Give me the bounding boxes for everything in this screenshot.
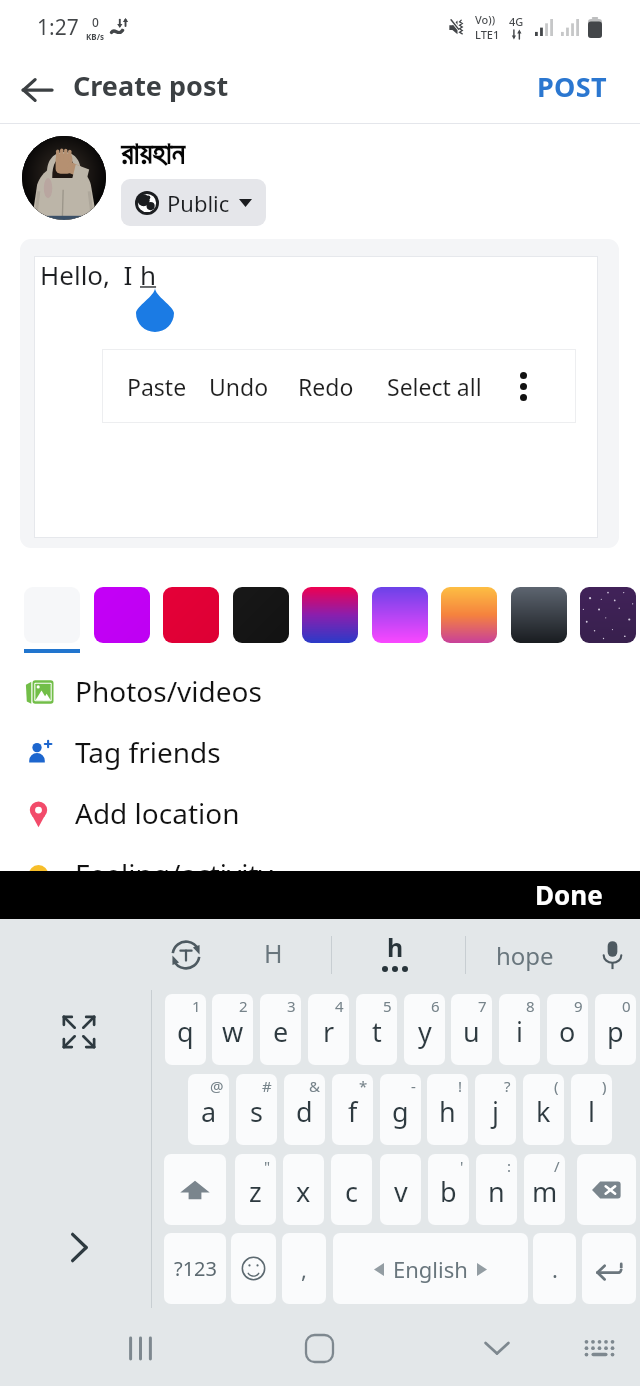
button[interactable]: 2 [212,994,253,1065]
button[interactable]: ! [427,1074,468,1145]
button[interactable]: & [284,1074,325,1145]
button[interactable]: 6 [404,994,445,1065]
button[interactable]: hope [485,929,565,981]
button[interactable]: Emoji [231,1233,276,1304]
staticText: j [492,1093,499,1130]
button[interactable]: Voice input [588,931,636,979]
button[interactable]: 1 [165,994,206,1065]
button[interactable]: * [332,1074,373,1145]
staticText: Paste [127,371,187,402]
button[interactable]: Background style 4 [233,587,289,643]
button[interactable]: ?123 [164,1233,226,1304]
button[interactable]: " [235,1154,276,1225]
button[interactable]: , [282,1233,326,1304]
staticText: t [372,1013,382,1050]
button[interactable]: Tag friends [0,722,640,783]
button[interactable]: Paste [119,349,195,423]
staticText: 1 [192,996,201,1016]
button[interactable]: Public [121,179,266,226]
button[interactable]: Translate [160,929,212,981]
button[interactable]: Hide keyboard [472,1323,522,1373]
button[interactable]: 7 [451,994,492,1065]
staticText: Hello, I [40,257,140,292]
staticText: Public [167,188,230,218]
button[interactable]: Background style 9 [580,587,636,643]
staticText: 5 [383,996,392,1016]
button[interactable]: Photos/videos [0,661,640,722]
button[interactable]: Background style 6 [372,587,428,643]
button[interactable]: Select all [369,349,499,423]
button[interactable]: Expand keyboard [52,1005,106,1059]
staticText: 4G [509,14,524,29]
button[interactable]: Background style 7 [441,587,497,643]
button[interactable]: 5 [356,994,397,1065]
button[interactable]: Backspace [577,1154,636,1225]
button[interactable]: Add location [0,783,640,844]
button[interactable]: Background style 2 [94,587,150,643]
button[interactable]: Undo [195,349,282,423]
button[interactable]: POST [528,64,616,115]
staticText: l [588,1093,595,1130]
staticText: v [394,1173,408,1210]
button[interactable]: Profile photo [22,136,106,220]
button[interactable]: Switch keyboard [574,1323,624,1373]
staticText: 1:27 [37,13,79,42]
button[interactable]: v [380,1154,421,1225]
staticText: e [273,1013,289,1050]
button[interactable]: Redo [282,349,369,423]
staticText: * [359,1076,368,1096]
staticText: u [463,1013,480,1050]
button[interactable]: - [380,1074,421,1145]
button[interactable]: Back [11,64,63,116]
staticText: h [439,1093,456,1130]
staticText: Create post [73,67,229,104]
button[interactable]: Next [53,1221,105,1273]
button[interactable]: 8 [499,994,540,1065]
button[interactable]: Done [511,872,640,919]
button[interactable]: Background style 5 [302,587,358,643]
button[interactable]: ) [571,1074,612,1145]
button[interactable]: 3 [260,994,301,1065]
button[interactable]: Shift [164,1154,226,1225]
button[interactable]: # [236,1074,277,1145]
button[interactable]: ' [428,1154,469,1225]
button[interactable]: c [331,1154,372,1225]
staticText: Select all [387,371,482,402]
button[interactable]: Home [294,1323,344,1373]
staticText: . [552,1254,558,1284]
staticText: : [507,1156,512,1176]
staticText: English [393,1254,468,1284]
staticText: q [177,1013,194,1050]
button[interactable]: ( [523,1074,564,1145]
button[interactable]: 0 [595,994,636,1065]
staticText: 9 [574,996,583,1016]
button[interactable]: Feeling/activity [0,844,640,905]
staticText: s [250,1093,263,1130]
button[interactable]: English [333,1233,528,1304]
staticText: d [296,1093,313,1130]
button[interactable]: Background style 8 [511,587,567,643]
staticText: Vo)) [475,12,496,27]
button[interactable]: Background style 3 [163,587,219,643]
staticText: g [392,1093,409,1130]
staticText: z [249,1173,262,1210]
button[interactable]: / [524,1154,565,1225]
staticText: Add location [75,794,240,832]
staticText: 2 [239,996,248,1016]
button[interactable]: Enter [582,1233,636,1304]
button[interactable]: @ [188,1074,229,1145]
button[interactable]: 4 [308,994,349,1065]
button[interactable]: h [369,930,421,972]
staticText: i [516,1013,523,1050]
staticText: ! [458,1076,463,1096]
button[interactable]: Recents [115,1323,165,1373]
button[interactable]: . [533,1233,576,1304]
button[interactable]: ? [475,1074,516,1145]
staticText: , [301,1254,307,1284]
button[interactable]: 9 [547,994,588,1065]
staticText: Undo [209,371,269,402]
button[interactable]: x [283,1154,324,1225]
button[interactable]: : [476,1154,517,1225]
button[interactable]: More options [485,349,562,423]
